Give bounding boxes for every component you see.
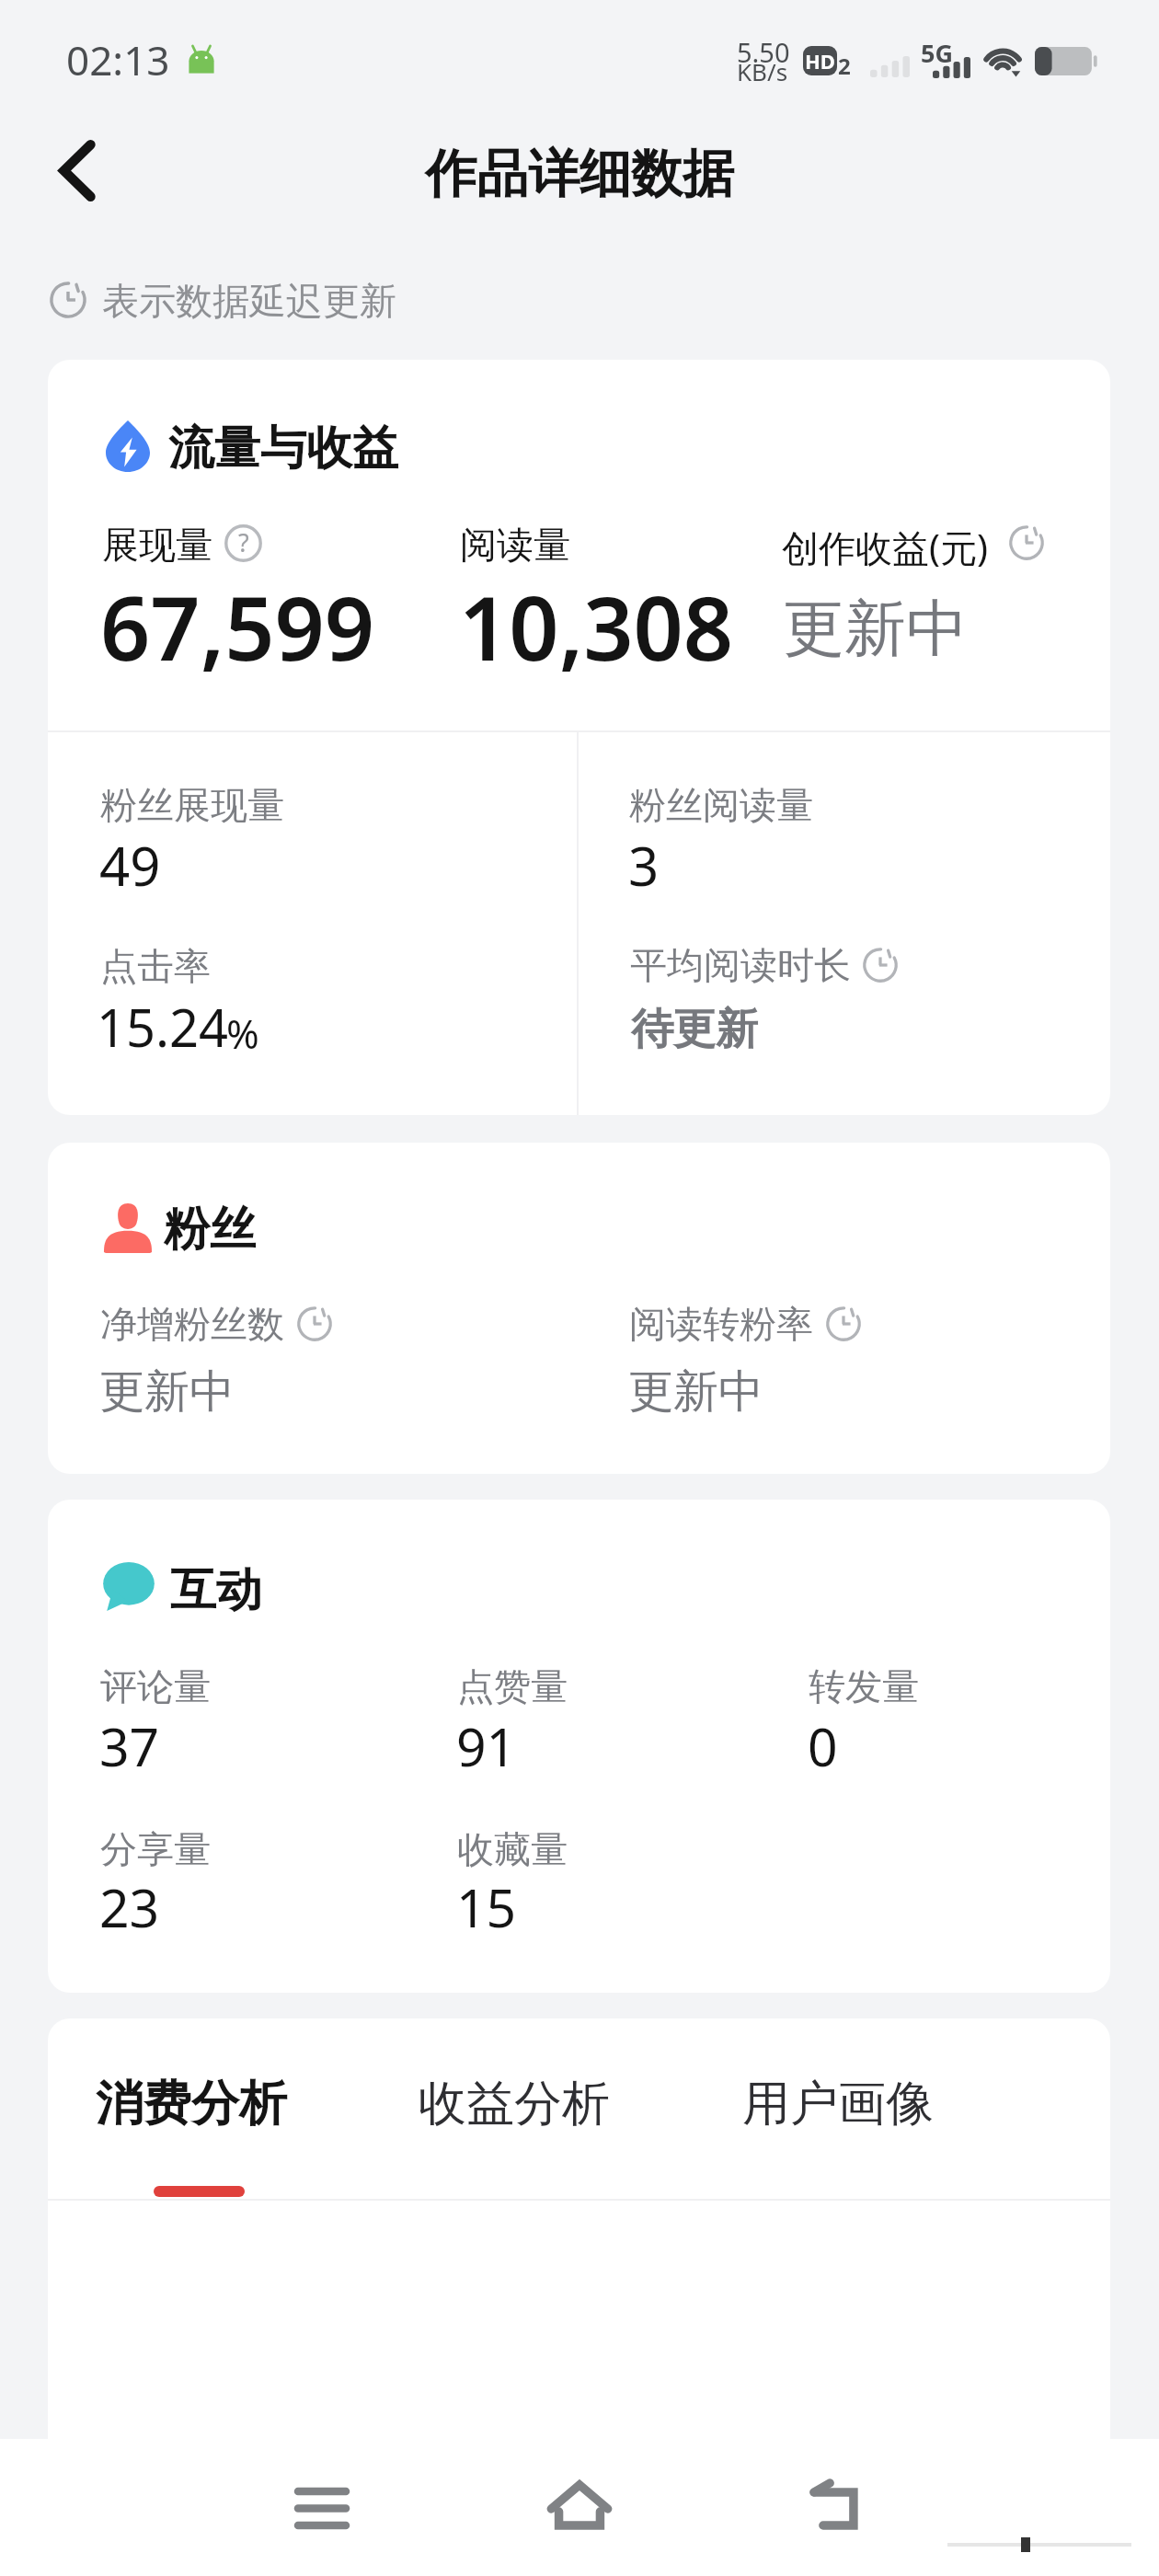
staticText: 点击率: [100, 943, 211, 989]
staticText: 待更新: [631, 1003, 758, 1056]
staticText: %: [226, 1006, 259, 1061]
staticText: 转发量: [809, 1663, 919, 1709]
staticText: 消费分析: [96, 2074, 287, 2134]
staticText: ?: [238, 525, 249, 559]
staticText: 49: [99, 829, 161, 902]
staticText: KB/s: [737, 55, 788, 87]
staticText: 粉丝展现量: [100, 782, 284, 828]
staticText: 91: [456, 1710, 517, 1782]
staticText: 收益分析: [419, 2074, 610, 2134]
staticText: 阅读转粉率: [629, 1301, 813, 1347]
staticText: 点赞量: [457, 1663, 568, 1709]
staticText: 更新中: [783, 590, 968, 667]
staticText: 展现量: [102, 522, 212, 568]
staticText: 互动: [170, 1561, 262, 1619]
staticText: 评论量: [100, 1663, 211, 1709]
staticText: 创作收益(元): [782, 522, 988, 572]
staticText: 0: [808, 1710, 838, 1782]
button[interactable]: Recent apps: [258, 2444, 386, 2569]
staticText: 更新中: [99, 1363, 235, 1420]
button[interactable]: Home: [513, 2444, 642, 2569]
staticText: 37: [99, 1710, 160, 1782]
button[interactable]: Back: [773, 2444, 901, 2569]
staticText: 粉丝阅读量: [629, 782, 813, 828]
staticText: 表示数据延迟更新: [102, 278, 396, 324]
button[interactable]: 消费分析: [74, 2039, 315, 2186]
staticText: 15: [456, 1871, 517, 1943]
staticText: 作品详细数据: [425, 142, 734, 207]
staticText: 流量与收益: [168, 420, 398, 477]
staticText: 净增粉丝数: [100, 1301, 284, 1347]
button[interactable]: Back: [22, 120, 131, 226]
staticText: 15.24: [97, 992, 229, 1062]
staticText: 67,599: [100, 567, 375, 685]
staticText: 10,308: [459, 567, 734, 685]
staticText: 3: [628, 829, 660, 902]
button[interactable]: What is impressions?: [225, 525, 261, 561]
staticText: 平均阅读时长: [630, 942, 851, 988]
button[interactable]: 收益分析: [396, 2039, 637, 2186]
staticText: 阅读量: [460, 522, 570, 568]
staticText: 5.50: [737, 34, 790, 70]
staticText: 分享量: [100, 1826, 211, 1872]
staticText: 用户画像: [742, 2074, 934, 2134]
staticText: 23: [99, 1871, 160, 1943]
staticText: 粉丝: [164, 1201, 256, 1259]
staticText: HD: [805, 47, 835, 75]
button[interactable]: 用户画像: [720, 2039, 961, 2186]
staticText: 收藏量: [457, 1826, 568, 1872]
staticText: 2: [838, 51, 851, 81]
staticText: 5G: [921, 36, 953, 70]
staticText: 02:13: [66, 32, 170, 87]
staticText: 更新中: [628, 1363, 763, 1420]
